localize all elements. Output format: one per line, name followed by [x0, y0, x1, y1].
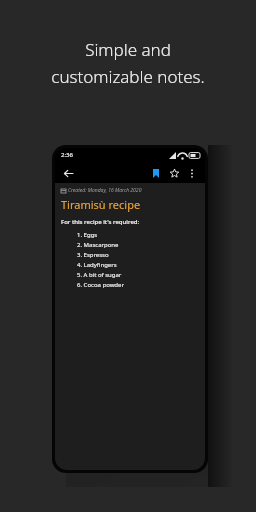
staticText: 4. Ladyfingers [77, 261, 117, 269]
staticText: For this recipe it's required: [61, 218, 140, 226]
button[interactable]: Favorite [166, 165, 182, 181]
staticText: 3. Espresso [77, 251, 109, 259]
staticText: 2:36 [61, 151, 73, 159]
button[interactable]: Back [60, 165, 76, 181]
button[interactable]: More options [184, 165, 200, 181]
staticText: 6. Cocoa powder [77, 281, 124, 289]
staticText: Simple and [85, 38, 171, 61]
staticText: 1. Eggs [77, 231, 98, 239]
staticText: Tiramisù recipe [61, 197, 141, 212]
staticText: 2. Mascarpone [77, 241, 119, 249]
staticText: Created: Monday, 16 March 2020 [68, 187, 142, 194]
button[interactable]: Bookmark [148, 165, 164, 181]
staticText: customizable notes. [51, 65, 205, 88]
staticText: 5. A bit of sugar [77, 271, 122, 279]
